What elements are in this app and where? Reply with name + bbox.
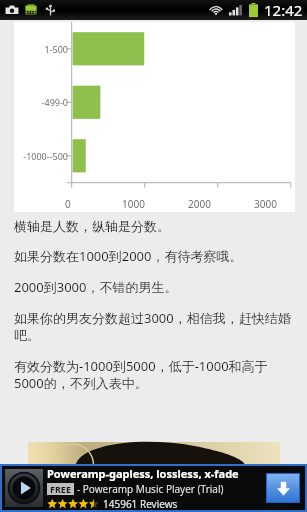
staticText: 1000	[122, 197, 145, 211]
staticText: -1000--500	[14, 150, 68, 162]
staticText: 横轴是人数，纵轴是分数。	[14, 218, 170, 234]
button[interactable]: 1-500	[14, 22, 295, 212]
staticText: FREE	[50, 483, 71, 495]
staticText: 12:42	[264, 0, 303, 20]
other: Poweramp icon	[5, 469, 43, 507]
staticText: 如果分数在1000到2000，有待考察哦。	[14, 247, 243, 265]
staticText: 如果你的男友分数超过3000，相信我，赶快结婚吧。	[14, 309, 297, 344]
staticText: 2000	[188, 197, 211, 211]
staticText: 有效分数为-1000到5000，低于-1000和高于5000的，不列入表中。	[14, 357, 297, 392]
button[interactable]: Poweramp icon	[2, 466, 305, 510]
staticText: 145961 Reviews	[103, 497, 178, 510]
staticText: 0	[65, 197, 71, 211]
staticText: 1-500	[14, 43, 68, 55]
staticText: -499-0	[14, 96, 68, 108]
button[interactable]	[28, 442, 280, 464]
staticText: 2000到3000，不错的男生。	[14, 278, 178, 296]
button[interactable]: Download	[267, 474, 299, 502]
staticText: 3000	[254, 197, 277, 211]
staticText: Poweramp-gapless, lossless, x-fade	[47, 466, 239, 481]
staticText: - Poweramp Music Player (Trial)	[77, 482, 224, 496]
